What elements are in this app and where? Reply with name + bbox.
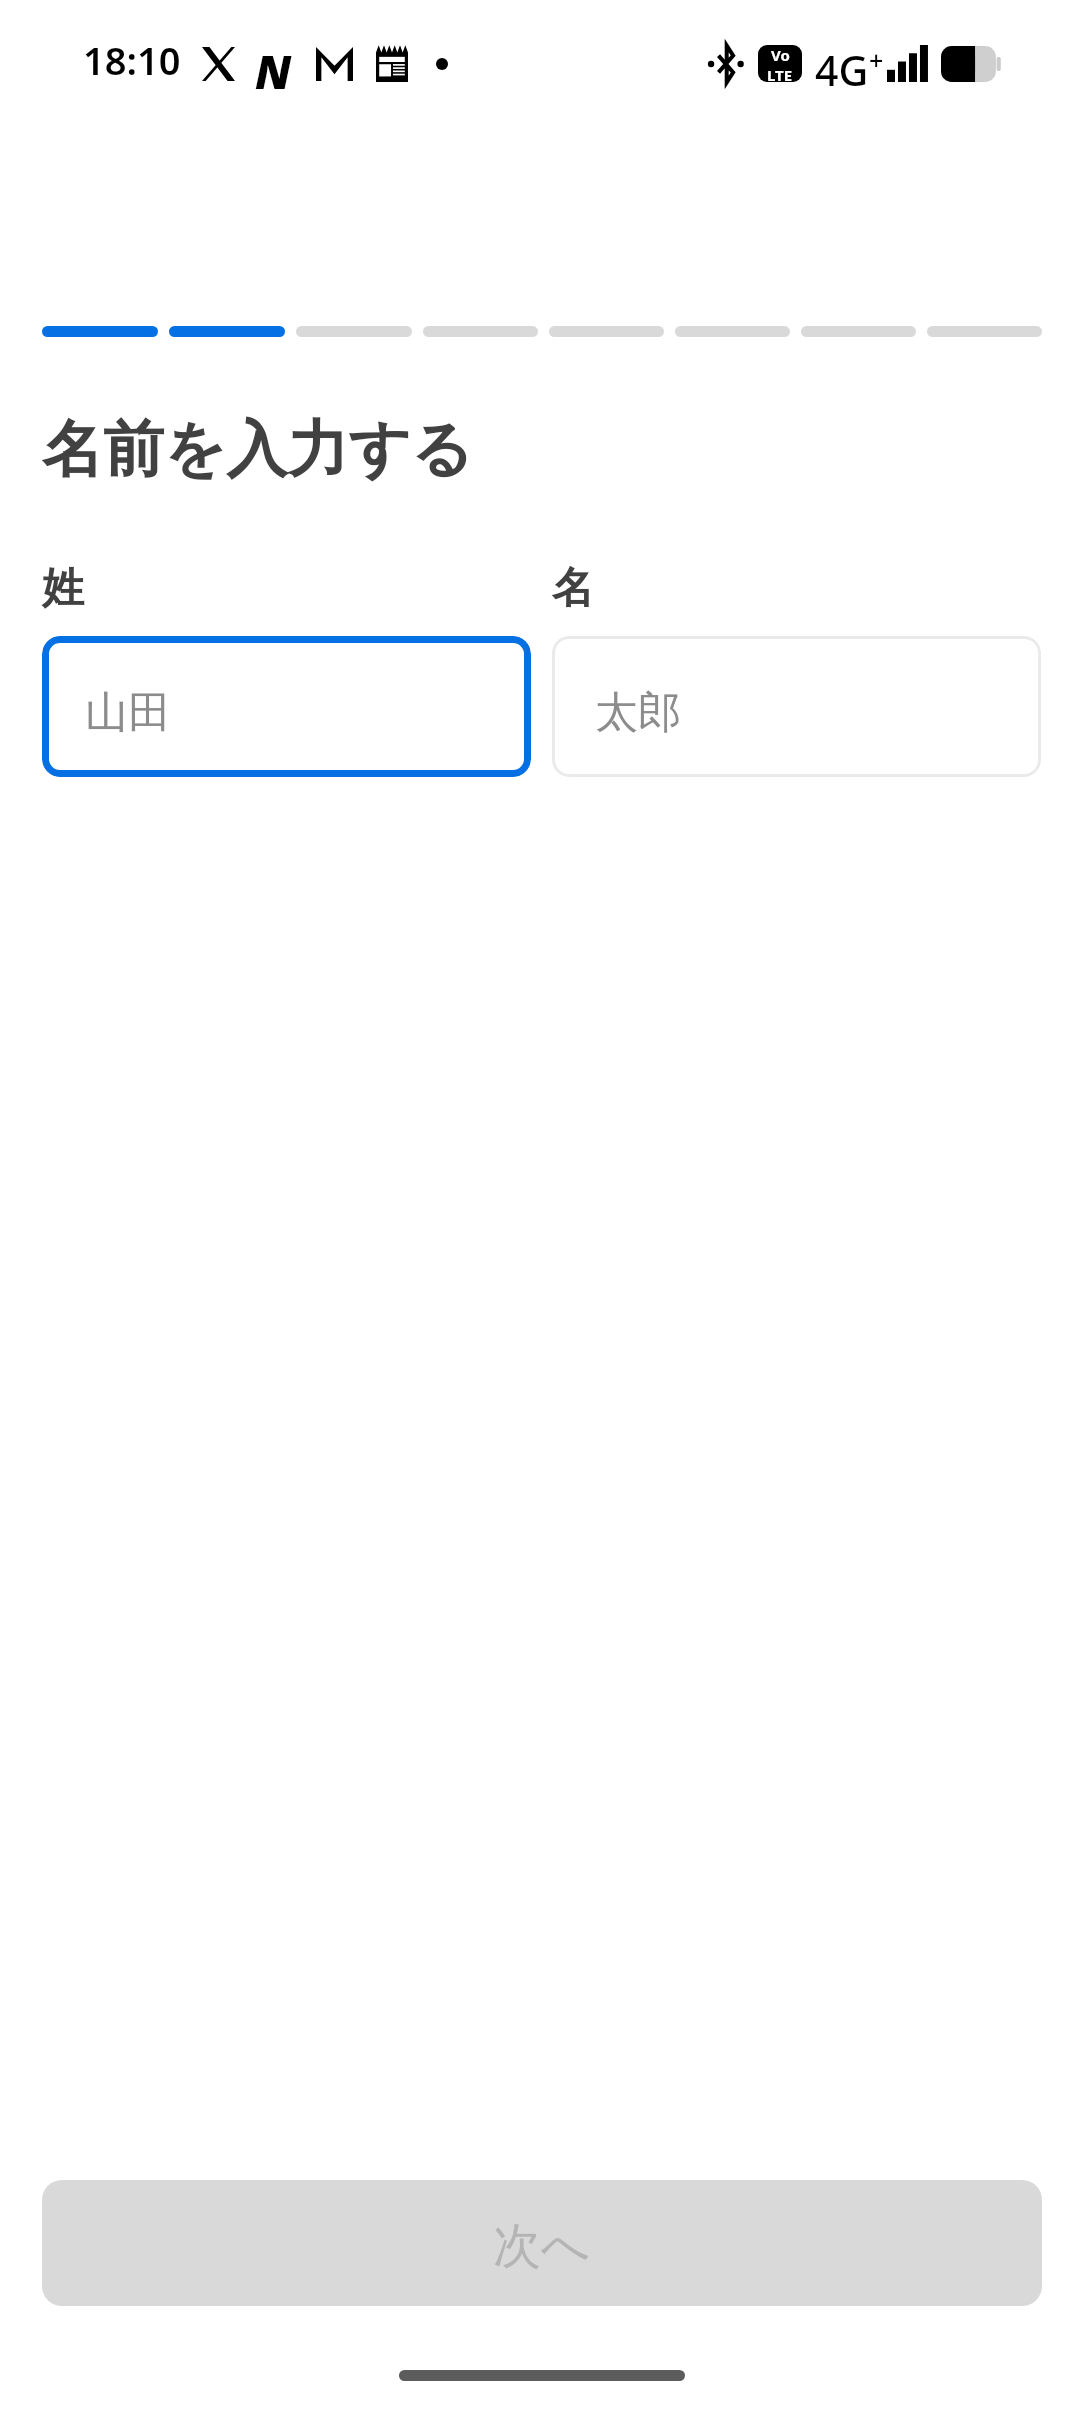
staticText: 山田 [85,686,171,740]
staticText: 名前を入力する [42,411,474,488]
button[interactable]: 名 input field [552,636,1041,777]
staticText: + [869,43,884,77]
staticText: 名 [552,562,594,615]
staticText: 4G [815,42,869,98]
staticText: Vo [771,45,790,65]
staticText: N [255,40,292,103]
staticText: 18:10 [83,34,181,86]
staticText: 太郎 [595,686,681,740]
button[interactable]: 次へ [42,2180,1042,2306]
staticText: 姓 [42,562,84,615]
staticText: 次へ [493,2216,591,2276]
button[interactable]: 姓 input field [42,636,531,777]
staticText: LTE [767,65,793,82]
